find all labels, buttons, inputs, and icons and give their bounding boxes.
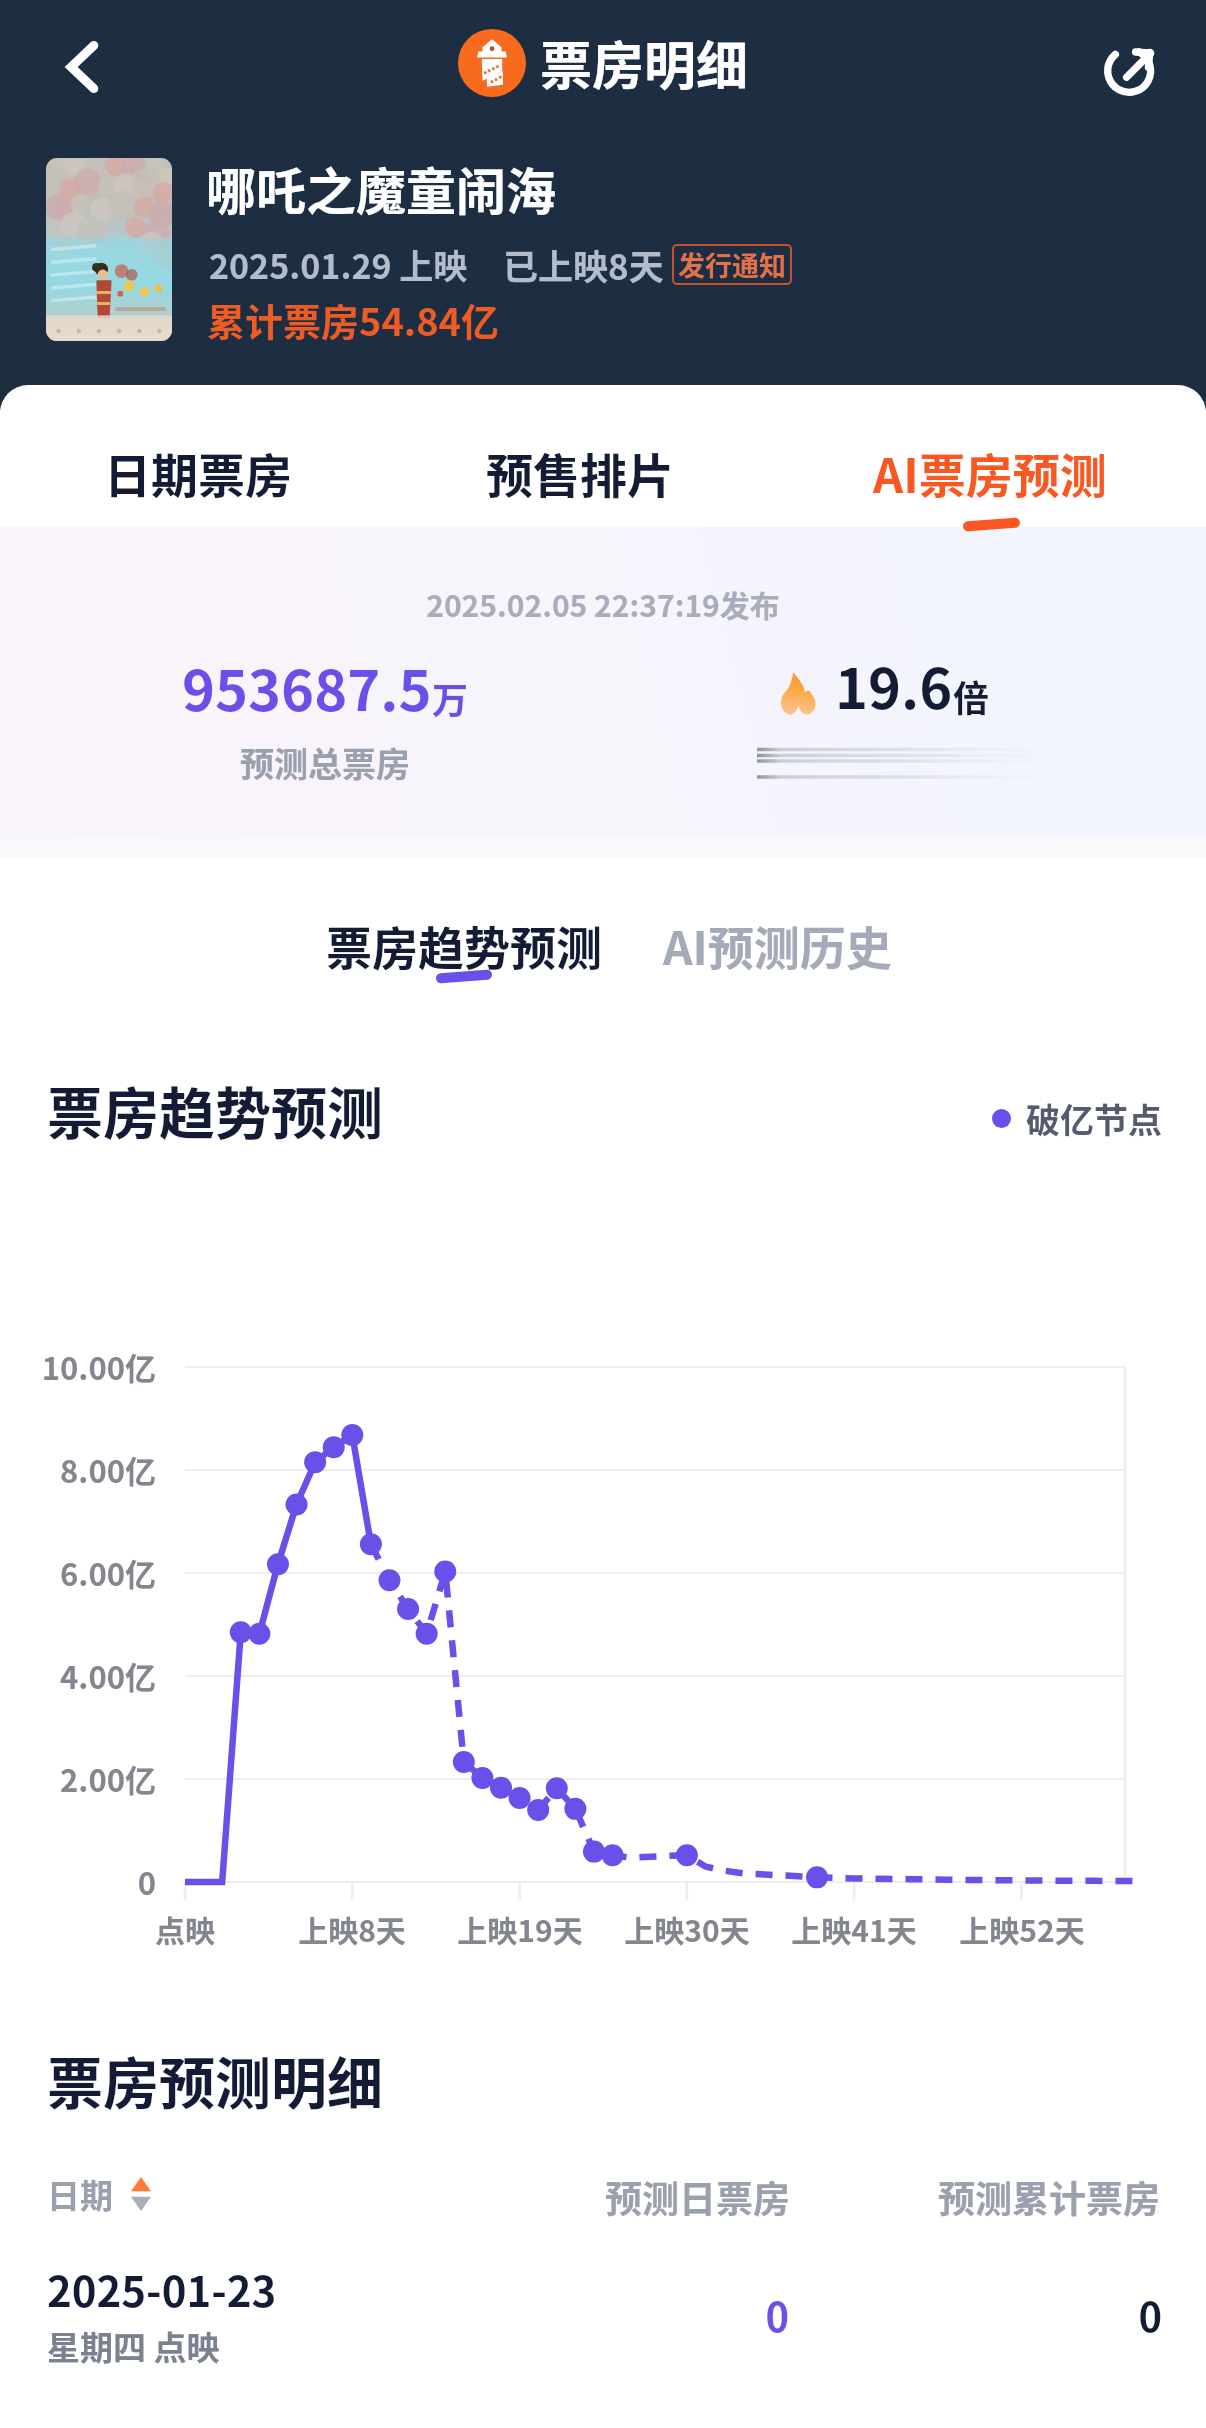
staticText: 19.6 bbox=[835, 644, 953, 725]
staticText: 预测累计票房 bbox=[0, 2170, 1160, 2224]
staticText: 已上映8天 bbox=[503, 239, 664, 290]
staticText: 哪吒之魔童闹海 bbox=[206, 152, 556, 224]
staticText: AI预测历史 bbox=[663, 912, 892, 979]
staticText: 10.00亿 bbox=[0, 1344, 156, 1389]
staticText: 预售排片 bbox=[486, 438, 674, 506]
button[interactable]: 日期票房 bbox=[38, 385, 358, 527]
staticText: 上映30天 bbox=[597, 1907, 777, 1950]
staticText: 0 bbox=[0, 1859, 156, 1904]
staticText: 倍 bbox=[953, 670, 990, 722]
button[interactable]: Back bbox=[36, 20, 130, 114]
staticText: 2025.02.05 22:37:19发布 bbox=[0, 582, 1206, 625]
staticText: 点映 bbox=[95, 1907, 275, 1950]
staticText: 上映8天 bbox=[262, 1907, 442, 1950]
staticText: 票房趋势预测 bbox=[326, 912, 602, 979]
button[interactable]: AI票房预测 bbox=[830, 385, 1150, 527]
staticText: 日期票房 bbox=[104, 438, 292, 506]
staticText: 4.00亿 bbox=[0, 1653, 156, 1698]
staticText: 票房明细 bbox=[540, 25, 749, 100]
staticText: AI票房预测 bbox=[873, 438, 1107, 506]
button[interactable]: 票房趋势预测 bbox=[326, 912, 602, 990]
staticText: 万 bbox=[432, 672, 469, 724]
staticText: 日期 bbox=[47, 2170, 113, 2218]
staticText: 预测总票房 bbox=[0, 738, 650, 787]
staticText: 上映52天 bbox=[932, 1907, 1112, 1950]
staticText: 2025-01-23 bbox=[47, 2258, 277, 2319]
staticText: 2.00亿 bbox=[0, 1756, 156, 1801]
staticText: 发行通知 bbox=[678, 245, 786, 284]
staticText: 953687.5 bbox=[182, 646, 432, 727]
button[interactable]: 预售排片 bbox=[420, 385, 740, 527]
button[interactable] bbox=[46, 158, 172, 341]
staticText: 上映41天 bbox=[764, 1907, 944, 1950]
staticText: 累计票房54.84亿 bbox=[207, 292, 500, 347]
staticText: 2025.01.29 上映 bbox=[209, 240, 468, 289]
button[interactable]: 发行通知 bbox=[678, 245, 786, 284]
staticText: 票房预测明细 bbox=[47, 2039, 383, 2120]
button[interactable]: Share bbox=[1086, 20, 1180, 114]
staticText: 票房趋势预测 bbox=[47, 1069, 383, 1150]
staticText: 0 bbox=[0, 2286, 789, 2344]
staticText: 0 bbox=[0, 2286, 1162, 2344]
staticText: 8.00亿 bbox=[0, 1447, 156, 1492]
button[interactable]: 2025-01-23 bbox=[0, 2240, 1206, 2418]
button[interactable]: AI预测历史 bbox=[663, 912, 892, 979]
staticText: 预测日票房 bbox=[0, 2170, 790, 2224]
staticText: 上映19天 bbox=[430, 1907, 610, 1950]
staticText: 破亿节点 bbox=[1026, 1094, 1162, 1143]
staticText: 6.00亿 bbox=[0, 1550, 156, 1595]
staticText: 星期四 点映 bbox=[47, 2322, 220, 2370]
